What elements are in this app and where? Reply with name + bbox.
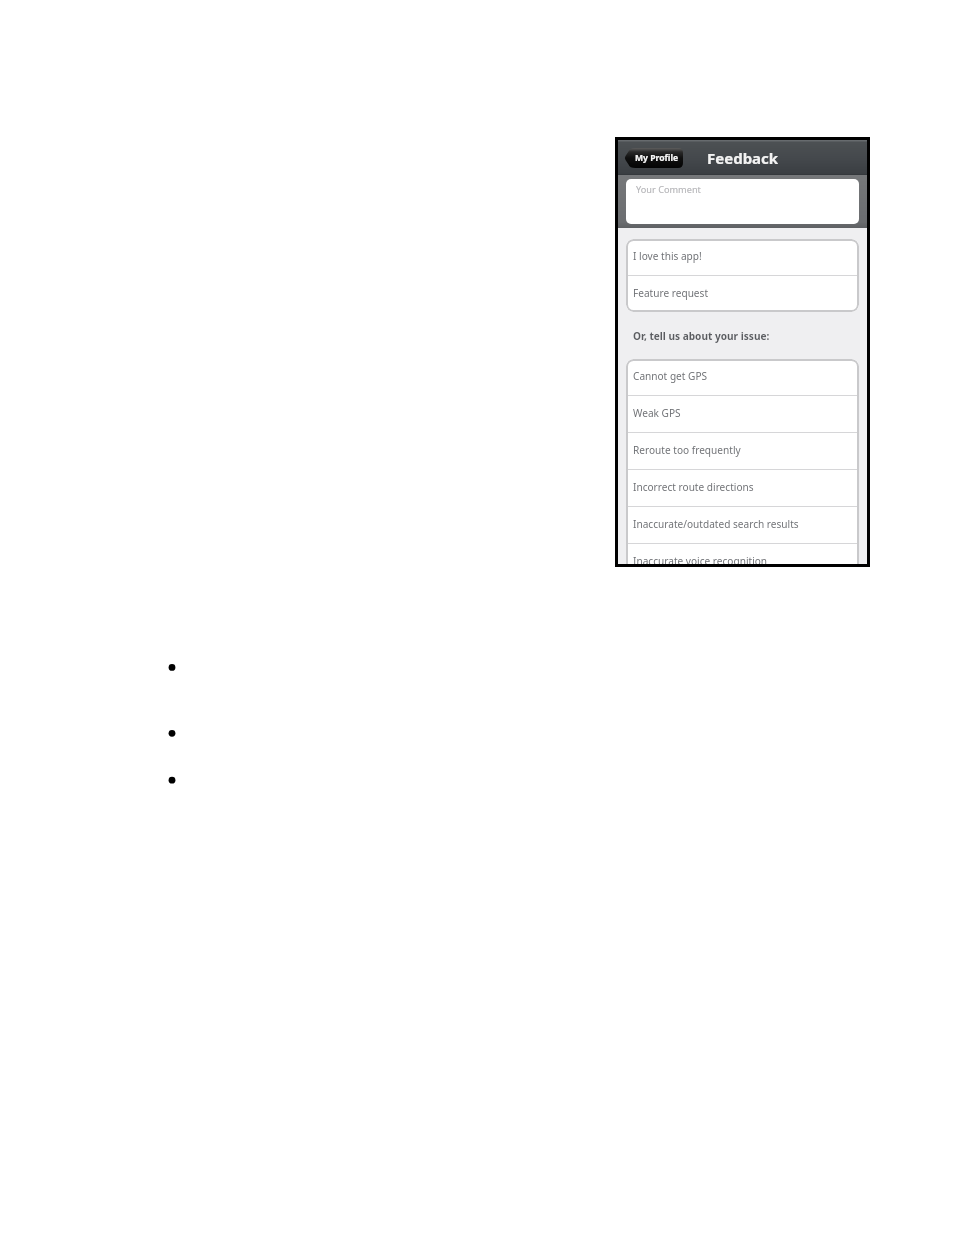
staticText: Weak GPS (633, 406, 681, 420)
staticText: I love this app! (633, 249, 702, 263)
staticText: Your Comment (636, 183, 701, 196)
staticText: Reroute too frequently (633, 443, 741, 457)
staticText: Inaccurate voice recognition (633, 554, 768, 564)
button[interactable]: Weak GPS (626, 396, 859, 432)
button[interactable]: Feature request (626, 276, 859, 312)
button[interactable]: Your Comment (626, 179, 859, 224)
staticText: Feedback (707, 148, 779, 168)
button[interactable]: Incorrect route directions (626, 470, 859, 506)
staticText: Or, tell us about your issue: (633, 329, 770, 343)
staticText: Feature request (633, 286, 709, 300)
button[interactable]: Reroute too frequently (626, 433, 859, 469)
staticText: Cannot get GPS (633, 369, 708, 383)
staticText: My Profile (635, 152, 679, 164)
button[interactable]: Inaccurate voice recognition (626, 544, 859, 564)
button[interactable]: I love this app! (626, 239, 859, 275)
button[interactable]: My Profile (625, 148, 683, 168)
button[interactable]: Cannot get GPS (626, 359, 859, 395)
staticText: Incorrect route directions (633, 480, 754, 494)
staticText: Inaccurate/outdated search results (633, 517, 799, 531)
button[interactable]: Inaccurate/outdated search results (626, 507, 859, 543)
